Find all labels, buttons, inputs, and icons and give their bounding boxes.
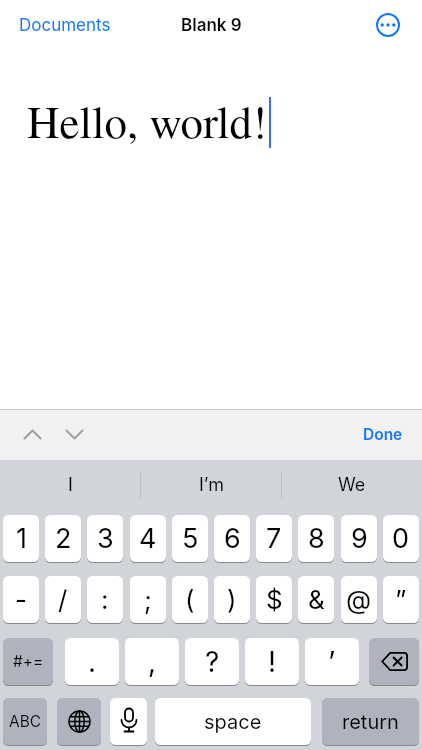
button[interactable]: &: [298, 576, 334, 623]
staticText: 0: [392, 522, 410, 555]
staticText: return: [342, 710, 399, 734]
staticText: Documents: [19, 15, 111, 36]
staticText: 2: [55, 522, 72, 555]
button[interactable]: 8: [298, 515, 334, 562]
staticText: -: [15, 584, 27, 615]
staticText: space: [204, 710, 262, 734]
staticText: 4: [139, 522, 157, 555]
staticText: ;: [144, 584, 152, 615]
staticText: 5: [182, 522, 199, 555]
staticText: 8: [308, 522, 325, 555]
button[interactable]: space: [155, 698, 311, 745]
staticText: We: [338, 474, 366, 496]
button[interactable]: (: [172, 576, 208, 623]
staticText: ): [227, 584, 237, 615]
staticText: Done: [363, 425, 403, 444]
button[interactable]: 0: [383, 515, 419, 562]
button[interactable]: ?: [185, 638, 239, 685]
button[interactable]: ,: [125, 638, 179, 685]
button[interactable]: 6: [214, 515, 250, 562]
button[interactable]: [369, 638, 419, 685]
button[interactable]: I: [0, 460, 140, 509]
staticText: $: [266, 584, 283, 615]
button[interactable]: [110, 698, 147, 745]
button[interactable]: @: [341, 576, 377, 623]
staticText: 1: [16, 522, 27, 555]
button[interactable]: 7: [256, 515, 292, 562]
button[interactable]: ’: [305, 638, 359, 685]
button[interactable]: !: [245, 638, 299, 685]
button[interactable]: #+=: [3, 638, 53, 685]
button[interactable]: I’m: [141, 460, 281, 509]
button[interactable]: [65, 429, 84, 440]
staticText: (: [185, 584, 195, 615]
button[interactable]: We: [282, 460, 422, 509]
staticText: 6: [224, 522, 241, 555]
button[interactable]: [23, 429, 42, 440]
staticText: #+=: [13, 652, 44, 671]
staticText: ABC: [9, 712, 42, 731]
staticText: .: [88, 645, 97, 679]
button[interactable]: 9: [341, 515, 377, 562]
button[interactable]: 1: [3, 515, 39, 562]
staticText: 9: [351, 522, 368, 555]
button[interactable]: 4: [130, 515, 166, 562]
button[interactable]: 2: [45, 515, 81, 562]
button[interactable]: return: [322, 698, 419, 745]
staticText: ?: [205, 645, 220, 679]
staticText: Hello, world!: [27, 91, 267, 151]
staticText: ”: [395, 584, 407, 615]
button[interactable]: ABC: [3, 698, 47, 745]
button[interactable]: .: [65, 638, 119, 685]
button[interactable]: :: [87, 576, 123, 623]
button[interactable]: Documents: [19, 15, 111, 36]
button[interactable]: Done: [363, 425, 403, 444]
button[interactable]: 3: [87, 515, 123, 562]
staticText: I’m: [199, 474, 224, 496]
button[interactable]: 5: [172, 515, 208, 562]
button[interactable]: ): [214, 576, 250, 623]
staticText: ’: [328, 645, 336, 679]
button[interactable]: ”: [383, 576, 419, 623]
button[interactable]: [57, 698, 101, 745]
staticText: I: [68, 474, 73, 496]
button[interactable]: ;: [130, 576, 166, 623]
staticText: Blank 9: [181, 15, 242, 36]
button[interactable]: [376, 13, 400, 37]
staticText: ,: [148, 645, 157, 679]
staticText: @: [346, 584, 372, 615]
staticText: /: [58, 584, 68, 615]
staticText: 3: [97, 522, 114, 555]
button[interactable]: -: [3, 576, 39, 623]
button[interactable]: $: [256, 576, 292, 623]
button[interactable]: /: [45, 576, 81, 623]
staticText: :: [101, 584, 109, 615]
staticText: 7: [266, 522, 282, 555]
staticText: &: [308, 584, 325, 615]
staticText: !: [268, 645, 277, 679]
